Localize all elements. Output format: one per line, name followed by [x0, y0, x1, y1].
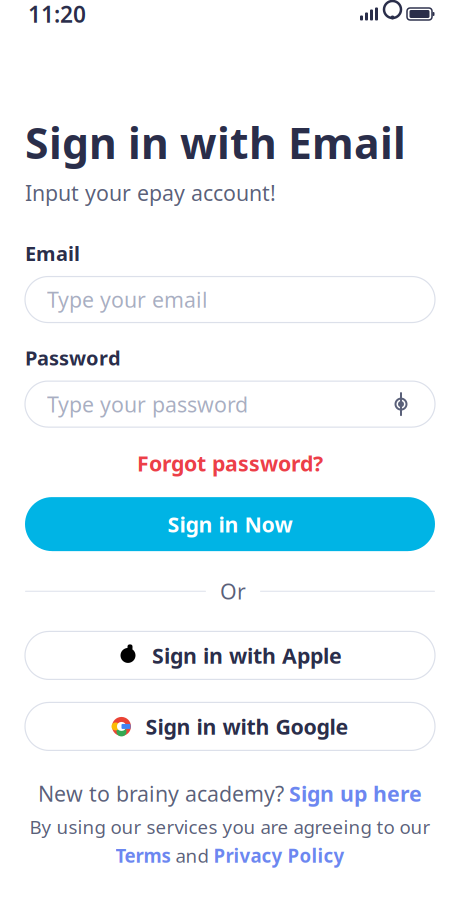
staticText: Type your email: [47, 285, 208, 314]
staticText: 11:20: [28, 0, 86, 29]
button[interactable]: Forgot password?: [0, 451, 460, 475]
staticText: Sign up here: [289, 779, 422, 808]
staticText: and: [175, 843, 208, 868]
staticText: By using our services you are agreeing t…: [29, 814, 430, 839]
button[interactable]: Privacy Policy: [213, 843, 344, 868]
staticText: Password: [25, 344, 121, 371]
staticText: Sign in with Apple: [152, 641, 342, 670]
staticText: New to brainy academy?: [38, 779, 284, 808]
staticText: Sign in with Google: [145, 712, 348, 741]
staticText: Email: [25, 240, 80, 267]
button[interactable]: New to brainy academy?: [0, 780, 460, 806]
staticText: Forgot password?: [137, 449, 323, 477]
staticText: Sign in Now: [167, 510, 292, 538]
staticText: Input your epay account!: [25, 179, 276, 207]
button[interactable]: Sign in Now: [25, 497, 435, 551]
button[interactable]: Terms: [115, 843, 170, 868]
staticText: Privacy Policy: [213, 843, 344, 868]
staticText: Type your password: [47, 390, 248, 418]
button[interactable]: Sign in with Apple: [25, 631, 435, 679]
staticText: Sign in with Email: [25, 114, 406, 171]
staticText: Or: [220, 577, 246, 605]
button[interactable]: Sign in with Google: [25, 702, 435, 750]
staticText: Terms: [115, 843, 170, 868]
